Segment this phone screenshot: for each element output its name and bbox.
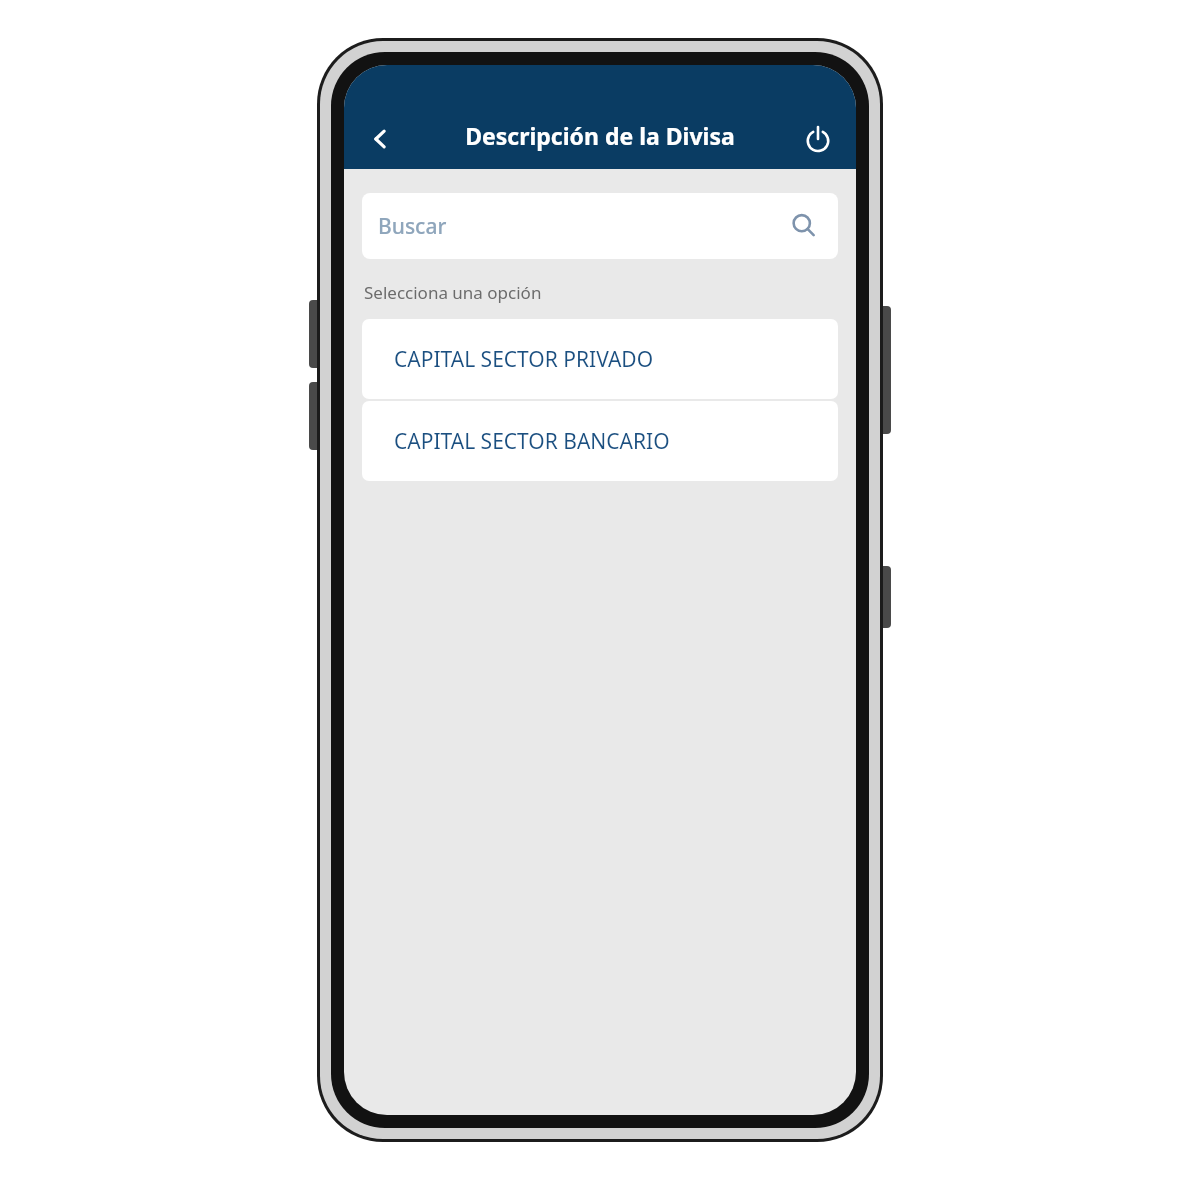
button[interactable]: CAPITAL SECTOR BANCARIO — [362, 401, 838, 481]
staticText: Buscar — [378, 212, 447, 241]
button[interactable]: Power / Logout — [790, 111, 846, 167]
staticText: CAPITAL SECTOR PRIVADO — [394, 345, 654, 374]
staticText: CAPITAL SECTOR BANCARIO — [394, 427, 670, 456]
button[interactable]: CAPITAL SECTOR PRIVADO — [362, 319, 838, 399]
staticText: Selecciona una opción — [364, 281, 542, 304]
button[interactable]: Buscar — [362, 193, 838, 259]
button[interactable]: Back — [352, 111, 408, 167]
staticText: Descripción de la Divisa — [465, 120, 735, 151]
